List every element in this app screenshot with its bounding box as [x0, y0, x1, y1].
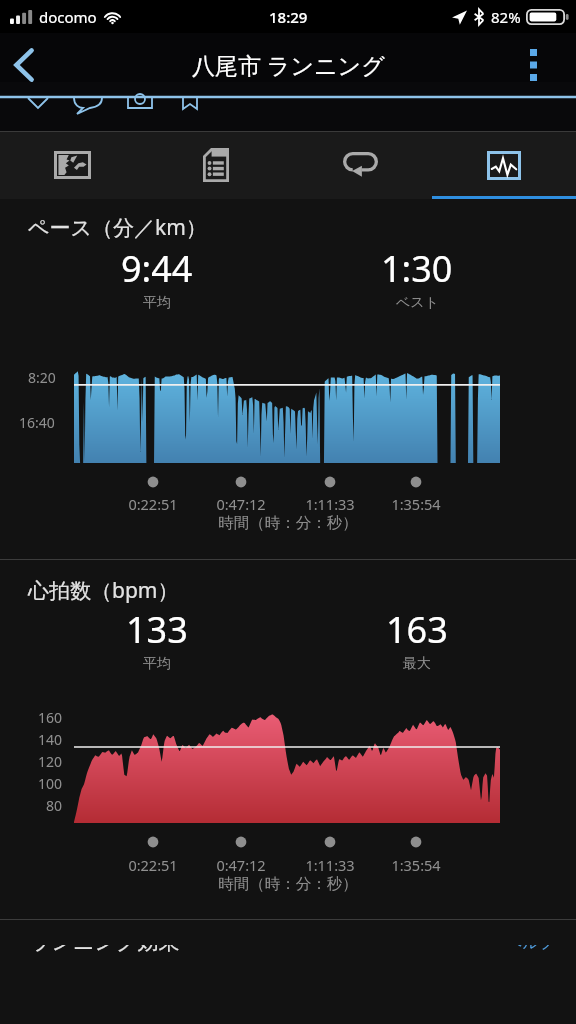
- staticText: 0:22:51: [113, 494, 193, 514]
- staticText: 1:35:54: [376, 855, 456, 875]
- staticText: ランニング効果: [30, 929, 180, 955]
- staticText: 82%: [491, 7, 521, 27]
- staticText: ヘルプ: [506, 933, 556, 953]
- staticText: 0:47:12: [201, 855, 281, 875]
- button[interactable]: ヘルプ: [506, 933, 556, 953]
- staticText: ベスト: [396, 294, 439, 312]
- staticText: 最大: [403, 655, 431, 673]
- staticText: 80: [12, 796, 62, 815]
- staticText: 120: [12, 752, 62, 771]
- button[interactable]: Details: [144, 131, 288, 199]
- staticText: 平均: [143, 294, 171, 312]
- staticText: 16:40: [19, 413, 55, 432]
- staticText: 140: [12, 730, 62, 749]
- staticText: 1:35:54: [376, 494, 456, 514]
- staticText: 心拍数（bpm）: [28, 576, 179, 605]
- staticText: 1:11:33: [290, 494, 370, 514]
- staticText: ペース（分／km）: [28, 213, 207, 242]
- button[interactable]: More options: [490, 33, 576, 96]
- staticText: docomo: [39, 7, 97, 27]
- button[interactable]: Back: [0, 33, 48, 96]
- staticText: 0:22:51: [113, 855, 193, 875]
- button[interactable]: Social actions: [0, 82, 576, 131]
- staticText: 八尾市 ランニング: [192, 49, 385, 80]
- button[interactable]: Map: [0, 131, 144, 199]
- staticText: 18:29: [269, 7, 308, 27]
- staticText: 1:30: [381, 244, 453, 293]
- staticText: 163: [386, 605, 448, 654]
- staticText: 時間（時：分：秒）: [0, 513, 576, 533]
- staticText: 0:47:12: [201, 494, 281, 514]
- button[interactable]: Charts: [432, 131, 576, 199]
- staticText: 133: [126, 605, 188, 654]
- button[interactable]: Laps: [288, 131, 432, 199]
- staticText: 8:20: [28, 368, 56, 387]
- staticText: 1:11:33: [290, 855, 370, 875]
- staticText: 160: [12, 708, 62, 727]
- staticText: 9:44: [121, 244, 193, 293]
- staticText: 時間（時：分：秒）: [0, 874, 576, 894]
- staticText: 100: [12, 774, 62, 793]
- staticText: 平均: [143, 655, 171, 673]
